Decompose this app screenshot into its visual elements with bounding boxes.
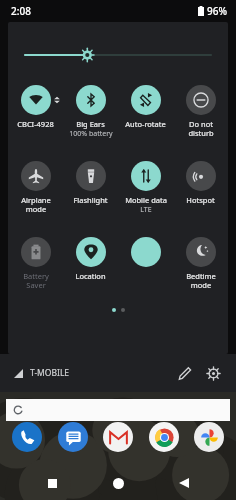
staticText: 100% battery xyxy=(69,129,113,139)
staticText: Do not disturb xyxy=(188,119,214,138)
button[interactable]: Location xyxy=(63,233,118,299)
button[interactable]: Flashlight xyxy=(63,157,118,223)
button[interactable]: Battery Saver xyxy=(8,233,63,299)
button[interactable]: Edit xyxy=(171,360,197,386)
button[interactable]: Chrome xyxy=(149,422,179,452)
button[interactable]: Messages xyxy=(58,422,88,452)
button[interactable]: Phone xyxy=(12,422,42,452)
button[interactable]: Mobile data xyxy=(118,157,173,223)
button[interactable]: Gmail xyxy=(103,422,133,452)
button[interactable]: Hotspot xyxy=(173,157,228,223)
staticText: Bedtime mode xyxy=(186,271,216,290)
staticText: 96% xyxy=(207,4,227,18)
button[interactable]: Auto-rotate xyxy=(118,81,173,147)
button[interactable]: Quick setting xyxy=(118,233,173,299)
button[interactable]: Search xyxy=(6,399,230,421)
button[interactable]: Brightness xyxy=(8,44,228,66)
staticText: Location xyxy=(75,271,106,281)
staticText: Mobile data xyxy=(125,195,167,205)
staticText: LTE xyxy=(140,205,152,215)
button[interactable]: Home xyxy=(104,469,132,497)
staticText: Auto-rotate xyxy=(125,119,166,129)
button[interactable]: Big Ears xyxy=(63,81,118,147)
button[interactable]: Settings xyxy=(200,360,226,386)
button[interactable]: CBCI-4928 xyxy=(8,81,63,147)
button[interactable]: Back xyxy=(170,469,198,497)
staticText: Big Ears xyxy=(76,119,105,129)
staticText: Battery Saver xyxy=(23,271,49,290)
button[interactable]: Photos xyxy=(194,422,224,452)
button[interactable]: Do not disturb xyxy=(173,81,228,147)
button[interactable]: Airplane mode xyxy=(8,157,63,223)
staticText: Flashlight xyxy=(73,195,108,205)
button[interactable]: Bedtime mode xyxy=(173,233,228,299)
button[interactable]: Recents xyxy=(38,469,66,497)
staticText: T-MOBILE xyxy=(30,367,70,379)
staticText: Airplane mode xyxy=(21,195,51,214)
staticText: 2:08 xyxy=(11,4,31,18)
staticText: CBCI-4928 xyxy=(17,119,54,129)
staticText: Hotspot xyxy=(186,195,215,205)
